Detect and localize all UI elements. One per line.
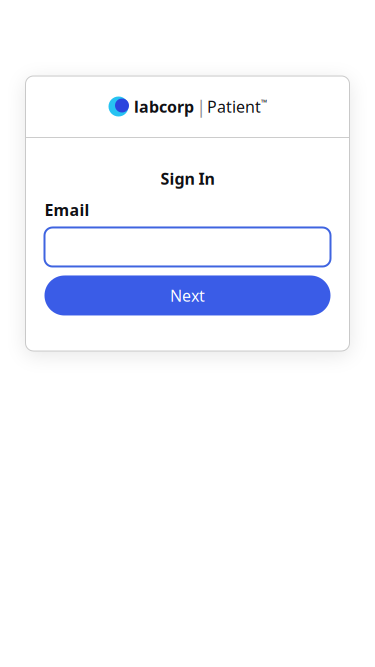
staticText: Patient — [207, 96, 261, 117]
staticText: labcorp — [134, 96, 194, 117]
staticText: Sign In — [160, 168, 214, 189]
button[interactable]: Next — [44, 275, 330, 315]
staticText: Email — [44, 199, 89, 220]
staticText: | — [196, 94, 206, 119]
staticText: ™ — [261, 97, 267, 108]
button[interactable]: Email — [44, 227, 330, 266]
staticText: Next — [170, 285, 205, 306]
